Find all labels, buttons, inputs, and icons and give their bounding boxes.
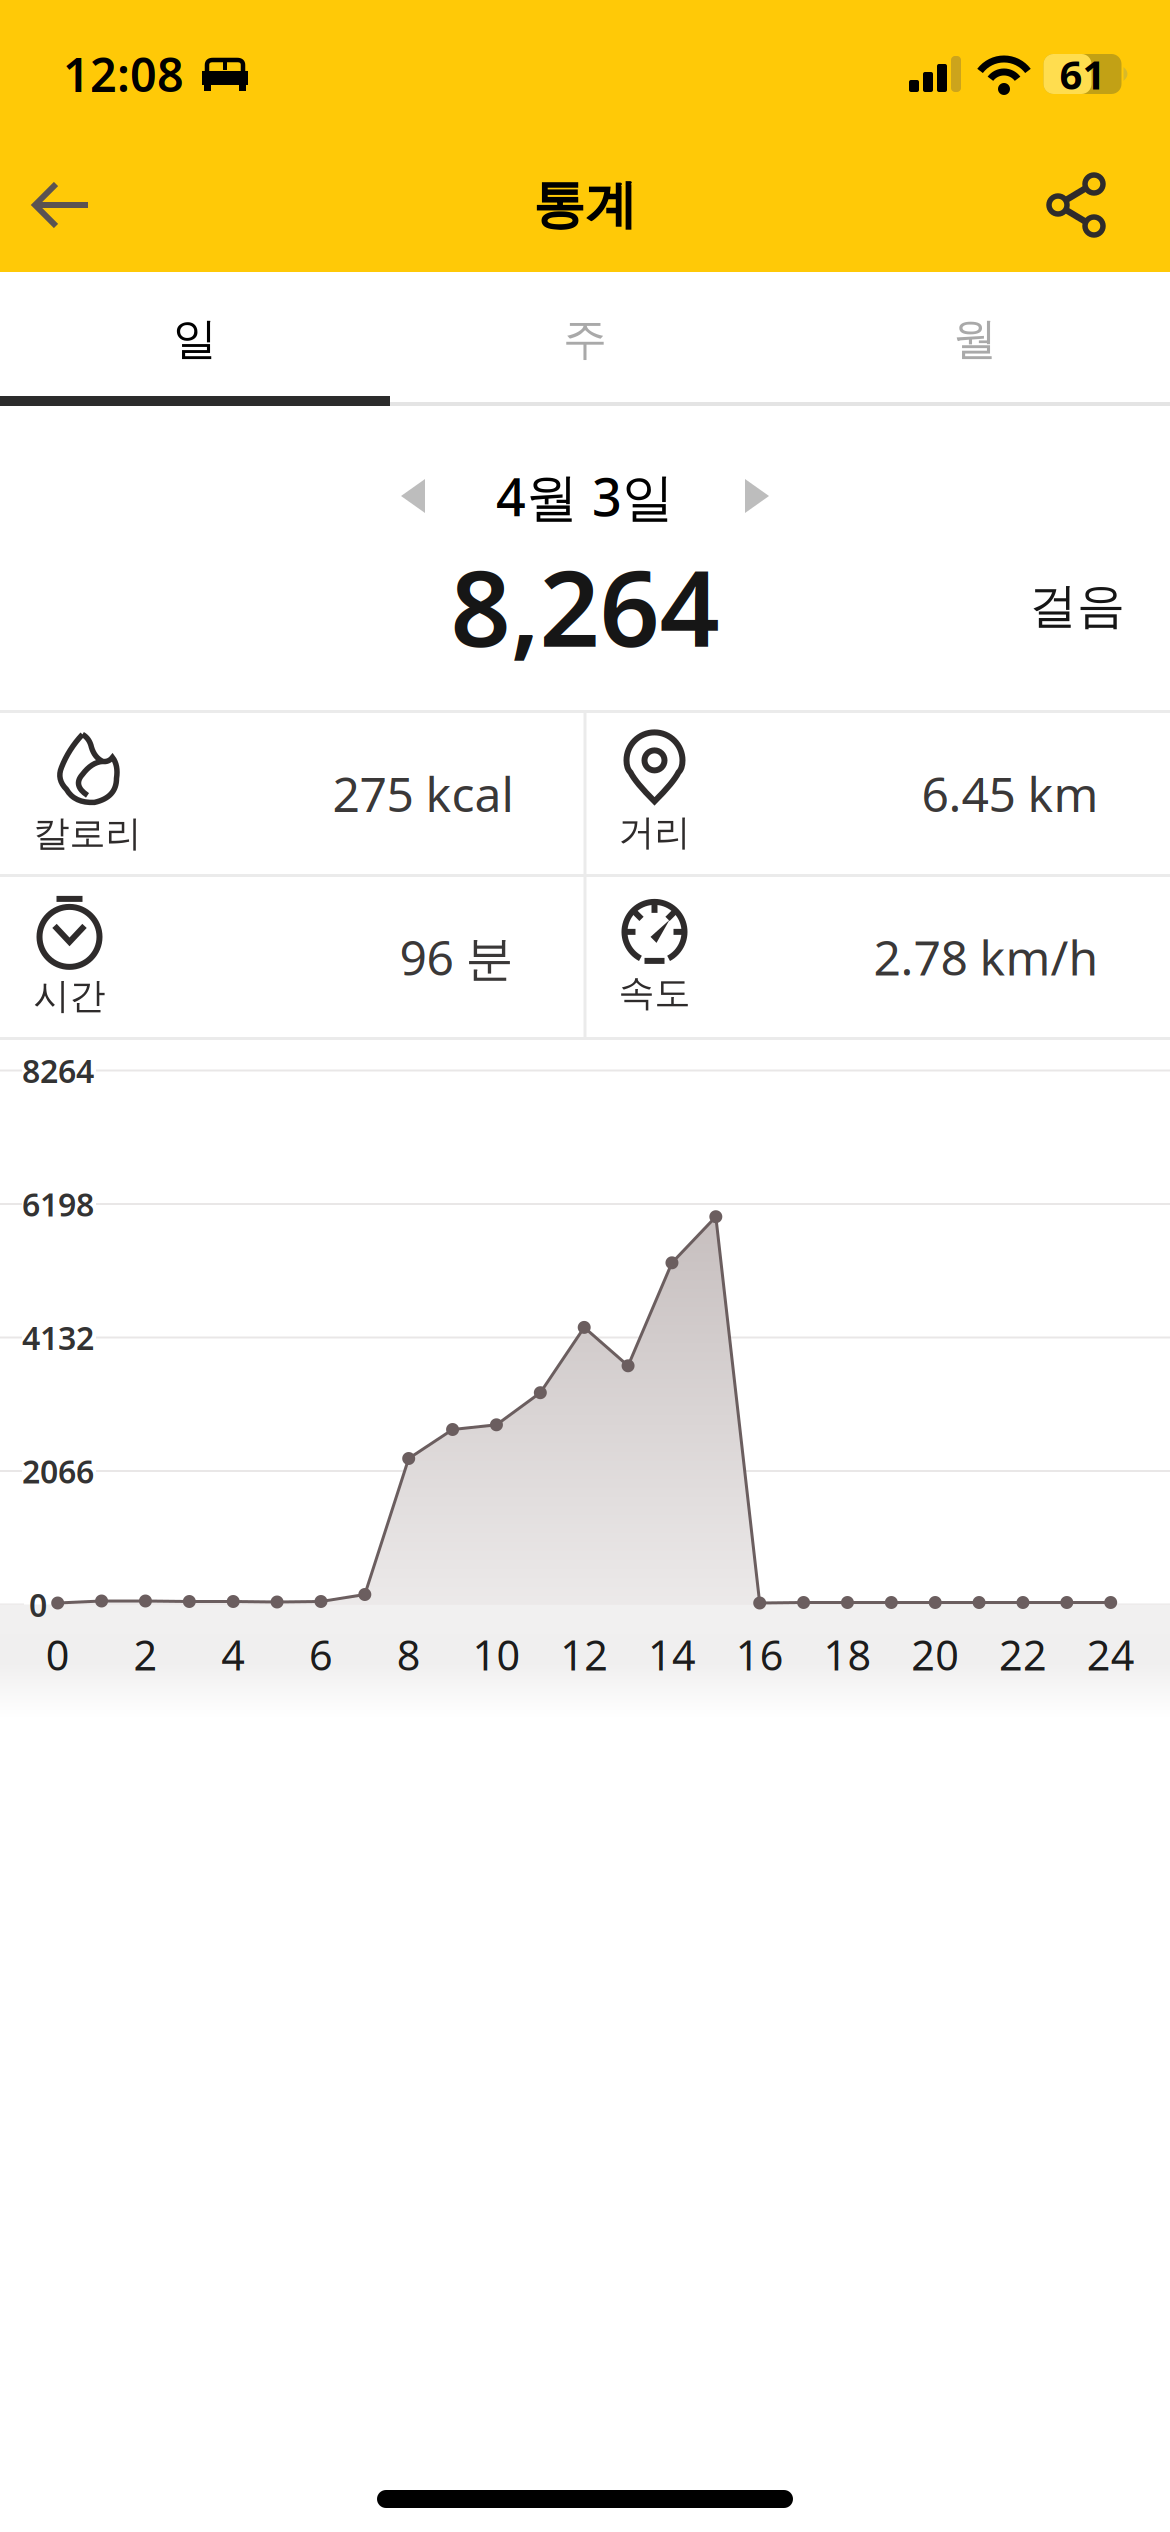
staticText: 8264	[22, 1049, 94, 1092]
staticText: 4월 3일	[496, 461, 674, 531]
staticText: 20	[911, 1627, 959, 1682]
staticText: 통계	[533, 173, 637, 237]
staticText: 10	[472, 1627, 520, 1682]
staticText: 6	[309, 1627, 333, 1682]
staticText: 6.45 km	[921, 762, 1098, 825]
staticText: 0	[29, 1583, 47, 1626]
staticText: 4	[221, 1627, 245, 1682]
staticText: 거리	[618, 810, 690, 855]
staticText: 일	[173, 312, 217, 366]
staticText: 주	[563, 312, 607, 366]
staticText: 0	[46, 1627, 70, 1682]
button[interactable]: Back	[0, 163, 88, 247]
staticText: 시간	[33, 974, 105, 1018]
staticText: 96 분	[399, 925, 513, 989]
staticText: 61	[1059, 47, 1105, 100]
staticText: 칼로리	[33, 811, 141, 856]
staticText: 12	[560, 1627, 608, 1682]
staticText: 18	[823, 1627, 871, 1682]
staticText: 275 kcal	[332, 762, 513, 825]
button[interactable]: 월	[780, 272, 1170, 406]
staticText: 24	[1087, 1627, 1135, 1682]
staticText: 16	[736, 1627, 784, 1682]
staticText: 속도	[618, 971, 690, 1015]
button[interactable]: 일	[0, 272, 390, 406]
staticText: 12:08	[63, 43, 184, 105]
staticText: 2066	[22, 1450, 94, 1492]
staticText: 월	[953, 312, 997, 366]
staticText: 8,264	[450, 536, 719, 676]
button[interactable]: Previous day	[401, 479, 425, 513]
staticText: 8	[397, 1627, 421, 1682]
staticText: 2.78 km/h	[873, 925, 1098, 989]
button[interactable]: Next day	[745, 479, 769, 513]
button[interactable]: Share	[1048, 161, 1170, 249]
staticText: 14	[648, 1627, 696, 1682]
staticText: 22	[999, 1627, 1047, 1682]
button[interactable]: 주	[390, 272, 780, 406]
staticText: 6198	[22, 1183, 94, 1225]
staticText: 걸음	[1029, 576, 1125, 635]
staticText: 2	[133, 1627, 157, 1682]
staticText: 4132	[22, 1316, 94, 1359]
